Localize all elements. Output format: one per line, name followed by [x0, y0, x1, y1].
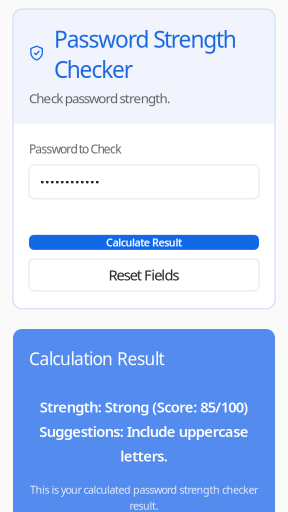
staticText: This is your calculated password strengt… [30, 482, 258, 497]
button[interactable]: Calculate Result [29, 235, 259, 250]
staticText: letters. [120, 446, 168, 465]
staticText: Checker [54, 54, 133, 84]
staticText: Calculation Result [29, 347, 164, 370]
staticText: Suggestions: Include uppercase [39, 421, 249, 441]
staticText: result. [129, 499, 158, 512]
staticText: Calculate Result [106, 235, 182, 249]
staticText: Password Strength [54, 24, 237, 54]
staticText: Strength: Strong (Score: 85/100) [40, 397, 248, 416]
staticText: Password to Check [29, 141, 121, 157]
button[interactable]: Reset Fields [29, 259, 259, 291]
staticText: Check password strength. [29, 89, 171, 107]
staticText: Reset Fields [108, 265, 180, 285]
staticText: •••••••••••• [40, 174, 100, 190]
